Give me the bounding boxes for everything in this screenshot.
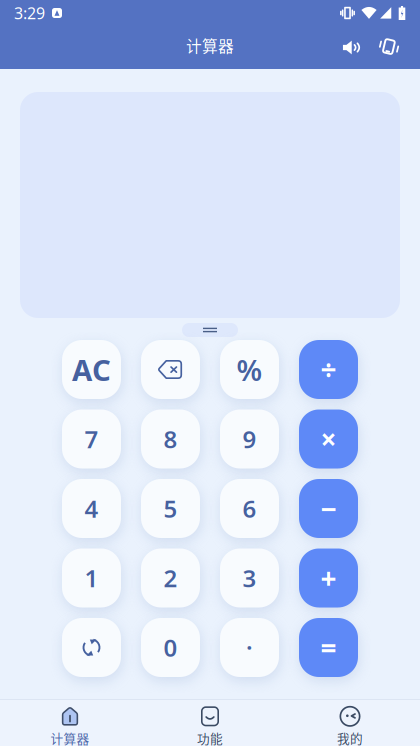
- button[interactable]: ÷: [299, 340, 358, 399]
- button[interactable]: 7: [62, 409, 121, 468]
- staticText: 1: [84, 562, 98, 594]
- staticText: 8: [163, 423, 177, 455]
- button[interactable]: ·: [220, 618, 279, 677]
- button[interactable]: Vibrate: [371, 26, 409, 69]
- staticText: 我的: [337, 729, 363, 746]
- button[interactable]: ×: [299, 409, 358, 468]
- staticText: 3:29: [14, 2, 45, 24]
- button[interactable]: [62, 618, 121, 677]
- staticText: 功能: [197, 729, 223, 746]
- staticText: 3: [242, 562, 256, 594]
- staticText: 2: [163, 562, 177, 594]
- staticText: ×: [320, 420, 336, 458]
- button[interactable]: 功能: [140, 700, 280, 746]
- button[interactable]: 8: [141, 409, 200, 468]
- staticText: −: [320, 490, 336, 527]
- staticText: +: [320, 559, 336, 597]
- staticText: ·: [246, 632, 253, 663]
- button[interactable]: Expand history: [182, 323, 238, 337]
- button[interactable]: −: [299, 479, 358, 538]
- button[interactable]: 6: [220, 479, 279, 538]
- button[interactable]: 1: [62, 548, 121, 607]
- button[interactable]: %: [220, 340, 279, 399]
- button[interactable]: AC: [62, 340, 121, 399]
- staticText: ÷: [320, 351, 336, 388]
- staticText: %: [236, 350, 262, 389]
- button[interactable]: 5: [141, 479, 200, 538]
- button[interactable]: +: [299, 548, 358, 607]
- button[interactable]: 3: [220, 548, 279, 607]
- staticText: 0: [163, 632, 177, 663]
- staticText: 5: [163, 493, 177, 524]
- button[interactable]: [141, 340, 200, 399]
- button[interactable]: =: [299, 618, 358, 677]
- button[interactable]: 计算器: [0, 700, 140, 746]
- staticText: =: [320, 629, 336, 666]
- button[interactable]: 0: [141, 618, 200, 677]
- button[interactable]: 4: [62, 479, 121, 538]
- button[interactable]: Sound: [333, 26, 371, 69]
- staticText: 9: [242, 423, 256, 455]
- staticText: 计算器: [186, 34, 234, 57]
- staticText: 7: [84, 423, 98, 455]
- button[interactable]: 我的: [280, 700, 420, 746]
- button[interactable]: 9: [220, 409, 279, 468]
- staticText: 4: [84, 493, 98, 524]
- staticText: 6: [242, 493, 256, 524]
- button[interactable]: 2: [141, 548, 200, 607]
- staticText: 计算器: [50, 729, 89, 746]
- staticText: AC: [72, 350, 111, 389]
